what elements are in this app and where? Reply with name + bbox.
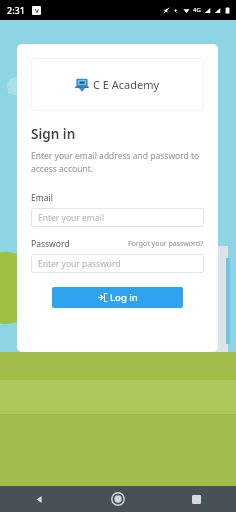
staticText: Log in (110, 291, 138, 304)
staticText: Enter your email (38, 212, 104, 224)
staticText: Password (31, 238, 70, 250)
staticText: Email (31, 192, 53, 204)
staticText: Enter your password (38, 258, 121, 270)
staticText: Enter your email address and password to… (31, 150, 204, 175)
button[interactable]: Log in (52, 287, 183, 308)
staticText: 2:31 (7, 4, 25, 16)
staticText: 4G (193, 6, 201, 14)
staticText: Forgot your password? (128, 239, 204, 249)
staticText: Sign in (31, 125, 76, 143)
button[interactable]: Enter your email (31, 208, 204, 227)
button[interactable]: Home (78, 486, 157, 512)
button[interactable]: Forgot your password? (128, 239, 204, 249)
button[interactable]: Recent apps (157, 486, 236, 512)
button[interactable]: Back (0, 486, 78, 512)
button[interactable]: Enter your password (31, 254, 204, 273)
staticText: C E Academy (93, 77, 160, 92)
staticText: V (35, 7, 39, 15)
